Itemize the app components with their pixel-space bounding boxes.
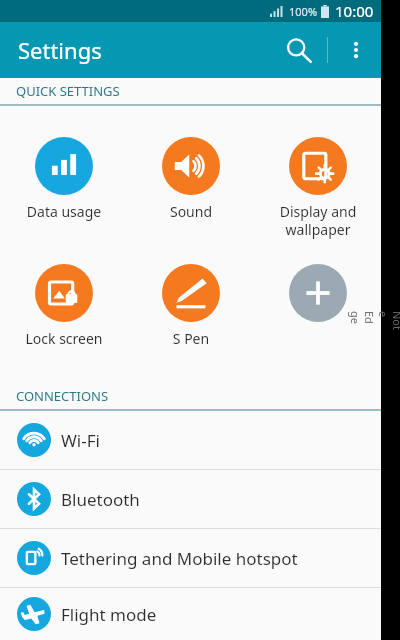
staticText: Flight mode xyxy=(61,603,157,626)
staticText: Settings xyxy=(18,35,102,65)
button[interactable]: Bluetooth xyxy=(0,470,381,528)
button[interactable]: Add shortcut xyxy=(262,264,374,322)
staticText: S Pen xyxy=(135,329,247,348)
staticText: Galaxy Note Edge xyxy=(348,311,400,330)
button[interactable]: Data usage xyxy=(8,137,120,221)
button[interactable]: Flight mode xyxy=(0,588,381,640)
staticText: QUICK SETTINGS xyxy=(16,82,120,100)
staticText: Display and wallpaper xyxy=(262,202,374,239)
button[interactable]: Sound xyxy=(135,137,247,221)
button[interactable]: S Pen xyxy=(135,264,247,348)
button[interactable]: Wi-Fi xyxy=(0,411,381,469)
button[interactable]: More options xyxy=(336,30,376,70)
staticText: 100% xyxy=(289,4,318,19)
staticText: Lock screen xyxy=(8,329,120,348)
button[interactable]: Search xyxy=(276,28,320,72)
staticText: Data usage xyxy=(8,202,120,221)
staticText: Bluetooth xyxy=(61,488,140,511)
staticText: 10:00 xyxy=(335,1,374,21)
staticText: Wi-Fi xyxy=(61,429,100,452)
staticText: Sound xyxy=(135,202,247,221)
button[interactable]: Display and wallpaper xyxy=(262,137,374,239)
button[interactable]: Tethering and Mobile hotspot xyxy=(0,529,381,587)
staticText: CONNECTIONS xyxy=(16,387,109,405)
staticText: Tethering and Mobile hotspot xyxy=(61,547,298,570)
button[interactable]: Lock screen xyxy=(8,264,120,348)
